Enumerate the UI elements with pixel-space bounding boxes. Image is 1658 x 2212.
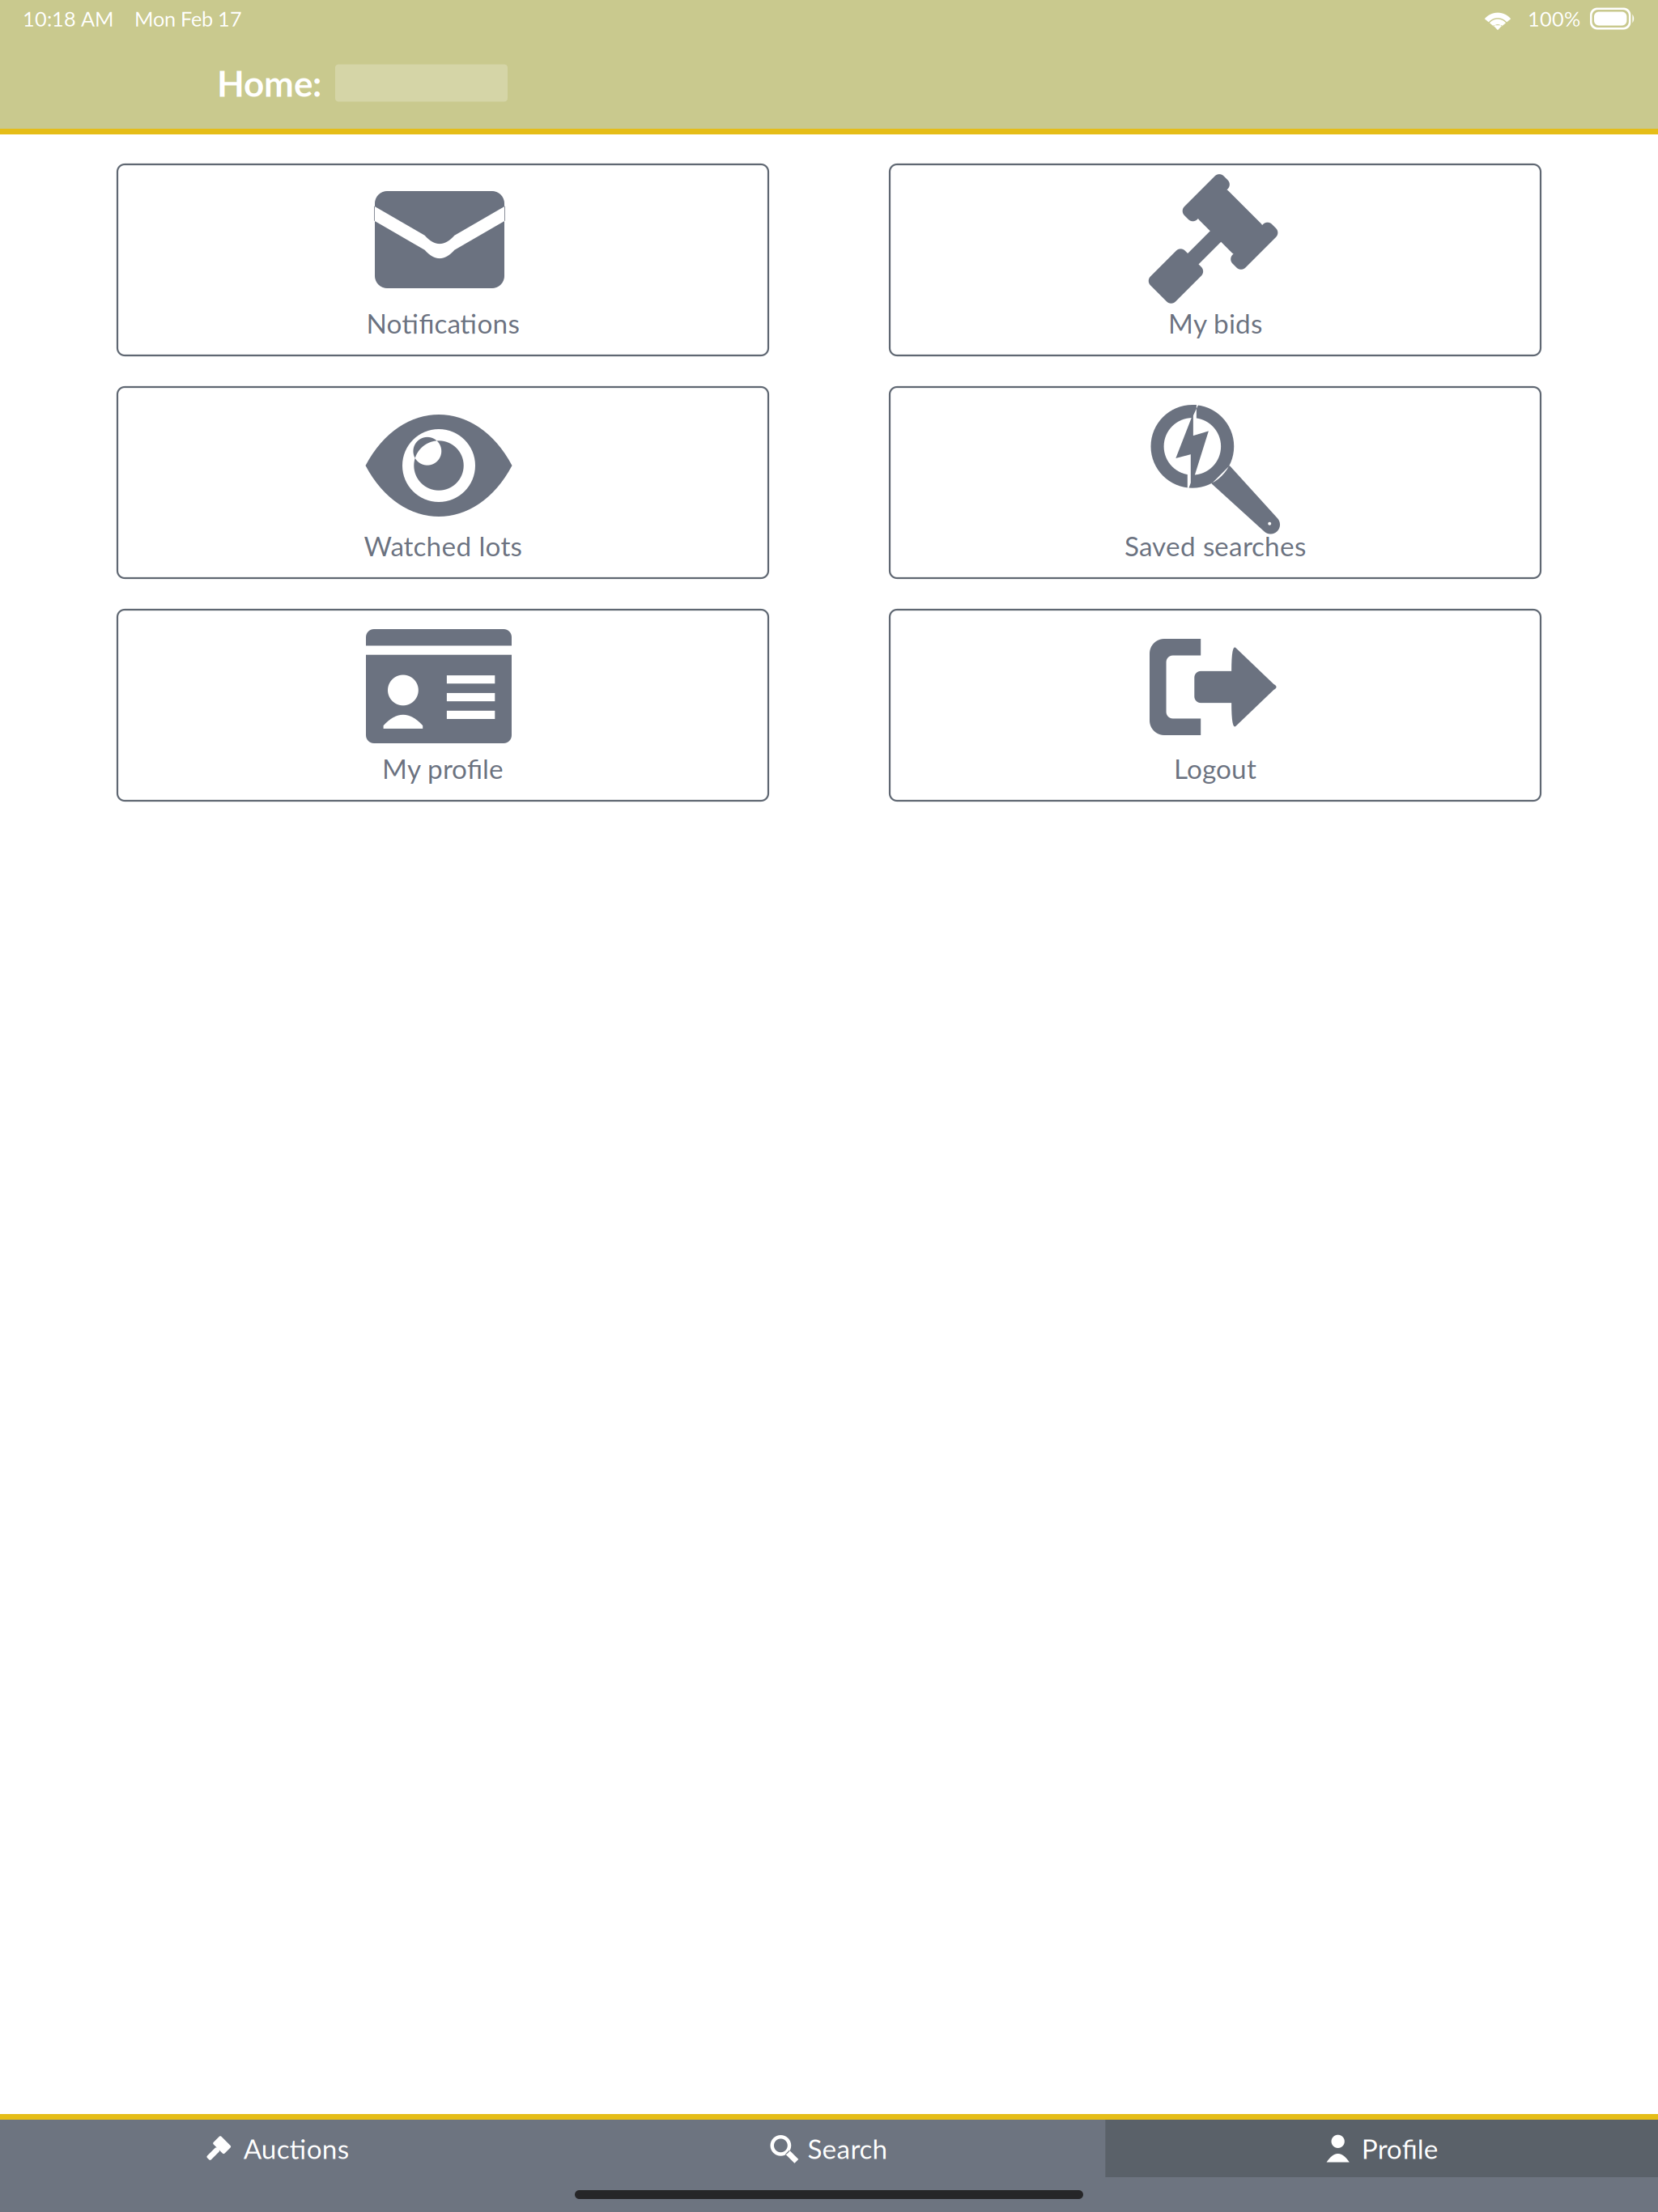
staticText: Mon Feb 17 (134, 6, 242, 31)
staticText: My profile (382, 752, 504, 785)
button[interactable]: Auctions (0, 2120, 553, 2212)
staticText: 100% (1528, 6, 1580, 31)
staticText: 10:18 AM (23, 6, 114, 31)
staticText: Auctions (244, 2132, 349, 2165)
button[interactable]: Watched lots (117, 387, 768, 578)
staticText: Saved searches (1124, 530, 1306, 562)
button[interactable]: Notifications (117, 164, 768, 355)
button[interactable]: My bids (890, 164, 1541, 355)
staticText: Home: (217, 62, 321, 104)
button[interactable]: Logout (890, 610, 1541, 801)
button[interactable]: Saved searches (890, 387, 1541, 578)
staticText: Logout (1174, 752, 1256, 785)
staticText: My bids (1168, 307, 1262, 339)
staticText: Profile (1361, 2132, 1438, 2165)
staticText: Search (808, 2132, 888, 2165)
button[interactable]: Profile (1105, 2120, 1658, 2212)
button[interactable]: Search (553, 2120, 1105, 2212)
button[interactable]: My profile (117, 610, 768, 801)
staticText: Watched lots (364, 530, 522, 562)
staticText: Notifications (366, 307, 519, 339)
